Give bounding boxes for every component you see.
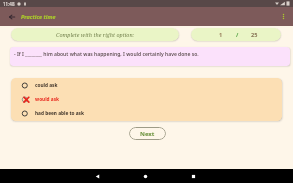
staticText: could ask [35, 82, 58, 88]
button[interactable]: could ask [11, 78, 282, 92]
button[interactable]: Navigate up [6, 7, 18, 26]
staticText: Practice time [21, 13, 56, 20]
button[interactable]: 1 [191, 28, 281, 41]
staticText: - If I ________ him about what was happe… [14, 51, 199, 58]
button[interactable]: Next [129, 127, 166, 140]
staticText: / [236, 31, 239, 39]
button[interactable]: would ask [11, 92, 282, 106]
button[interactable]: had been able to ask [11, 106, 282, 120]
button[interactable]: Back [73, 169, 121, 183]
staticText: 11:48 [3, 1, 15, 7]
staticText: had been able to ask [35, 110, 84, 116]
staticText: Next [140, 130, 155, 138]
button[interactable]: Complete with the right option: [11, 28, 179, 41]
button[interactable]: Recent apps [169, 169, 217, 183]
staticText: Complete with the right option: [56, 31, 135, 38]
button[interactable]: Home [121, 169, 169, 183]
staticText: 1 [219, 31, 223, 39]
staticText: 25 [251, 31, 258, 39]
button[interactable]: More options [274, 7, 293, 26]
staticText: would ask [35, 96, 60, 102]
